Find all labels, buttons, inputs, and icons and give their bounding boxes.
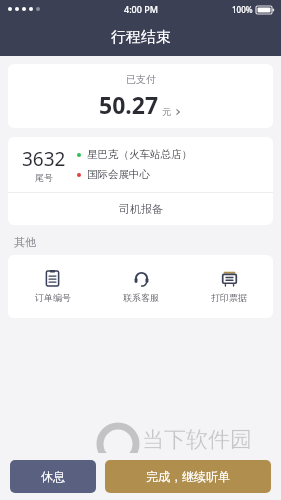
button[interactable]: Contact support (97, 262, 185, 311)
staticText: 当下软件园 (142, 426, 252, 454)
button[interactable]: 完成，继续听单 (105, 460, 271, 493)
staticText: 完成，继续听单 (146, 469, 230, 484)
staticText: 100% (232, 4, 253, 15)
staticText: 订单编号 (35, 292, 71, 303)
staticText: 50.27 (99, 89, 159, 120)
staticText: 司机报备 (119, 202, 163, 216)
staticText: 打印票据 (211, 292, 247, 303)
staticText: 其他 (14, 235, 36, 249)
staticText: 联系客服 (123, 292, 159, 303)
staticText: 4:00 PM (124, 3, 158, 15)
staticText: 元 (162, 106, 171, 117)
staticText: 尾号 (35, 172, 53, 183)
button[interactable]: Print receipt (185, 262, 273, 311)
button[interactable]: 休息 (10, 460, 96, 493)
other: Contact support (133, 270, 150, 287)
staticText: 3632 (22, 146, 66, 172)
staticText: 休息 (41, 469, 65, 484)
staticText: 星巴克（火车站总店） (87, 148, 192, 161)
button[interactable]: 司机报备 (8, 193, 273, 225)
staticText: 行程结束 (111, 28, 171, 47)
staticText: 已支付 (126, 73, 156, 86)
other: Print receipt (221, 270, 238, 287)
button[interactable]: Order number (8, 262, 97, 311)
staticText: 国际会展中心 (87, 168, 150, 181)
other: Order number (44, 270, 61, 287)
button[interactable]: 已支付 (8, 64, 273, 128)
